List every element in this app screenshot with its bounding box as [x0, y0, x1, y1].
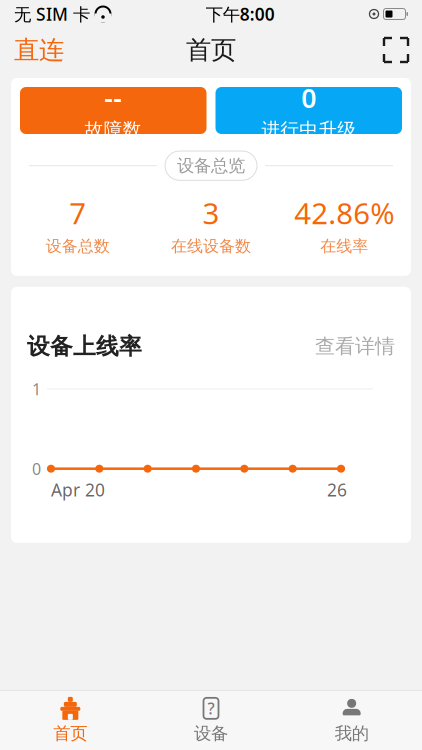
staticText: Apr 20 — [51, 478, 105, 501]
staticText: 42.86% — [294, 193, 394, 232]
staticText: 在线率 — [320, 236, 368, 256]
button[interactable]: 直连 — [0, 26, 78, 73]
staticText: 进行中升级 — [261, 118, 356, 141]
staticText: 查看详情 — [315, 334, 395, 359]
staticText: 设备总数 — [46, 236, 110, 256]
staticText: 设备上线率 — [27, 332, 142, 360]
button[interactable]: 扫一扫 — [370, 30, 422, 70]
staticText: 直连 — [14, 34, 64, 65]
button[interactable]: 0 — [215, 87, 402, 134]
button[interactable]: 我的 — [281, 691, 422, 750]
staticText: 首页 — [53, 723, 87, 744]
staticText: 0 — [32, 458, 41, 479]
button[interactable]: -- — [20, 87, 206, 134]
staticText: 3 — [202, 193, 219, 232]
staticText: 下午8:00 — [206, 2, 275, 25]
button[interactable]: 查看详情 — [315, 334, 395, 359]
staticText: 首页 — [186, 34, 236, 65]
staticText: 我的 — [335, 723, 369, 744]
staticText: -- — [104, 80, 122, 115]
staticText: 无 SIM 卡 — [14, 2, 90, 25]
staticText: 1 — [32, 378, 41, 399]
staticText: 7 — [69, 193, 86, 232]
staticText: 设备 — [194, 723, 228, 744]
staticText: 设备总览 — [177, 155, 245, 176]
staticText: 在线设备数 — [171, 236, 251, 256]
staticText: 26 — [327, 478, 347, 501]
staticText: 0 — [301, 80, 316, 115]
button[interactable]: 首页 — [0, 691, 141, 750]
staticText: ? — [207, 698, 214, 719]
staticText: 故障数 — [85, 118, 142, 141]
button[interactable]: ? — [141, 691, 281, 750]
